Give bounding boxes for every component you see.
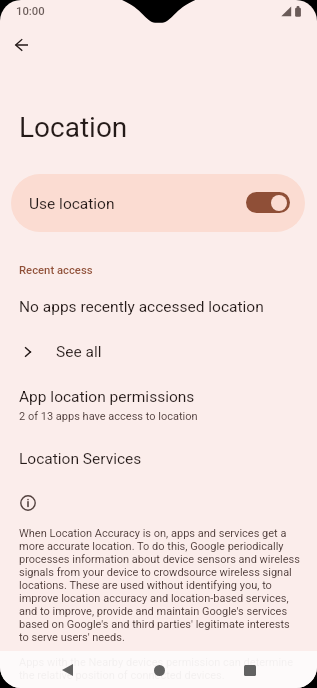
staticText: 10:00 [16,5,45,18]
staticText: Apps with the Nearby devices permission … [19,656,301,682]
staticText: 2 of 13 apps have access to location [19,410,198,423]
staticText: No apps recently accessed location [19,298,264,316]
button[interactable]: Recent apps [237,657,263,683]
button[interactable]: App location permissions [0,388,317,423]
staticText: See all [56,343,102,361]
staticText: App location permissions [19,388,195,406]
button[interactable]: Navigate up [3,27,39,63]
button[interactable]: See all [0,336,317,368]
button[interactable]: Home [146,657,172,683]
staticText: Use location [29,195,115,213]
staticText: Location [19,111,128,144]
button[interactable]: Location Services [0,440,317,478]
staticText: Recent access [19,264,93,277]
button[interactable]: Use location [11,174,305,232]
button[interactable]: Back [54,657,80,683]
staticText: When Location Accuracy is on, apps and s… [19,527,301,644]
